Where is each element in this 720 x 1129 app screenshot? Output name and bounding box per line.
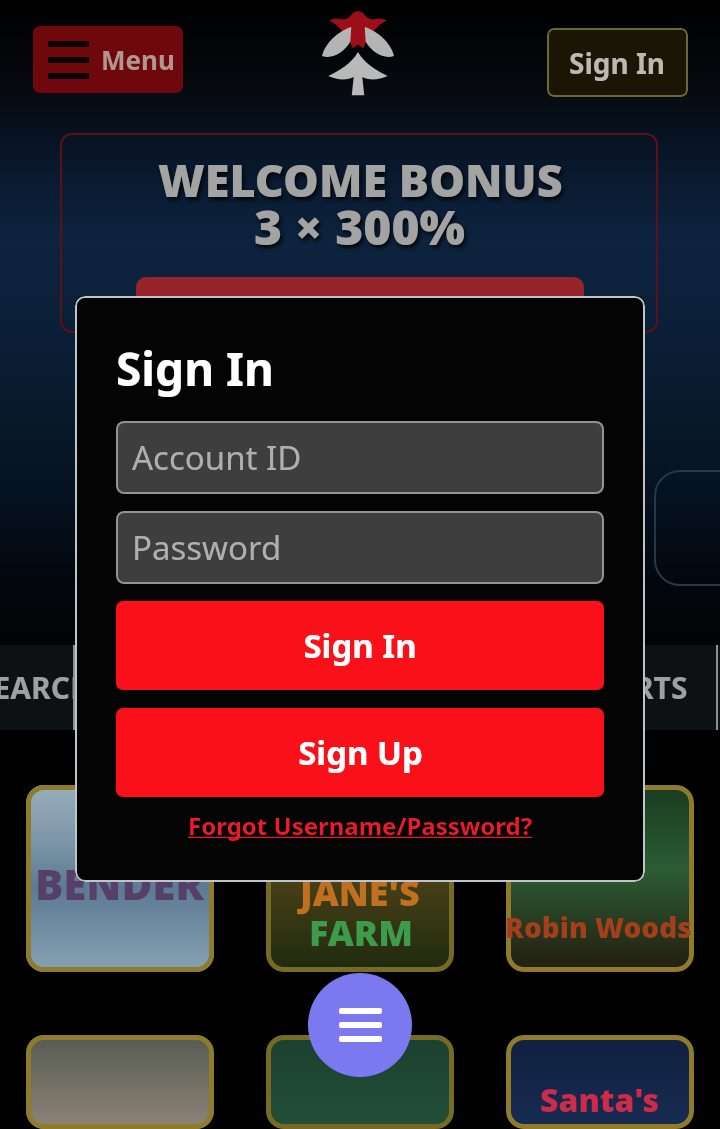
button[interactable]: Menu: [308, 973, 412, 1077]
button[interactable]: Sign Up: [116, 708, 604, 797]
button[interactable]: SLOTS: [150, 645, 290, 730]
button[interactable]: Sign In: [116, 601, 604, 690]
staticText: Robin Woods: [505, 908, 692, 946]
button[interactable]: TABLE: [330, 645, 470, 730]
button[interactable]: SEARCH: [0, 645, 108, 730]
staticText: Sign Up: [298, 730, 423, 775]
button[interactable]: SPORTS: [545, 645, 717, 730]
staticText: TABLE: [355, 667, 445, 708]
staticText: Menu: [101, 42, 175, 77]
button[interactable]: SPECIALS: [706, 645, 720, 730]
button[interactable]: Panda: [26, 1035, 214, 1129]
staticText: SEARCH: [0, 667, 93, 708]
staticText: FARM: [309, 908, 414, 957]
button[interactable]: Account ID: [116, 421, 604, 494]
staticText: Password: [132, 525, 282, 570]
button[interactable]: Jane's Farm: [266, 785, 454, 972]
staticText: WELCOME BONUS: [158, 149, 563, 210]
staticText: JANE'S: [300, 868, 420, 917]
button[interactable]: Sign In: [547, 28, 688, 97]
staticText: BENDER: [35, 855, 204, 912]
button[interactable]: The Bender: [26, 785, 214, 972]
button[interactable]: Blackjack: [266, 1035, 454, 1129]
button[interactable]: Forgot Username/Password?: [188, 809, 533, 842]
button[interactable]: Password: [116, 511, 604, 584]
staticText: Sign In: [569, 44, 666, 82]
staticText: 3 × 300%: [254, 194, 466, 259]
button[interactable]: [136, 277, 584, 353]
button[interactable]: Menu: [33, 26, 183, 93]
staticText: Sign In: [303, 623, 417, 668]
staticText: Sign In: [116, 337, 274, 400]
staticText: Santa's: [540, 1078, 660, 1122]
staticText: Account ID: [132, 435, 302, 480]
staticText: SLOTS: [175, 667, 265, 708]
button[interactable]: Santa: [506, 1035, 694, 1129]
button[interactable]: Robin in the Woods: [506, 785, 694, 972]
staticText: SPORTS: [575, 667, 688, 708]
